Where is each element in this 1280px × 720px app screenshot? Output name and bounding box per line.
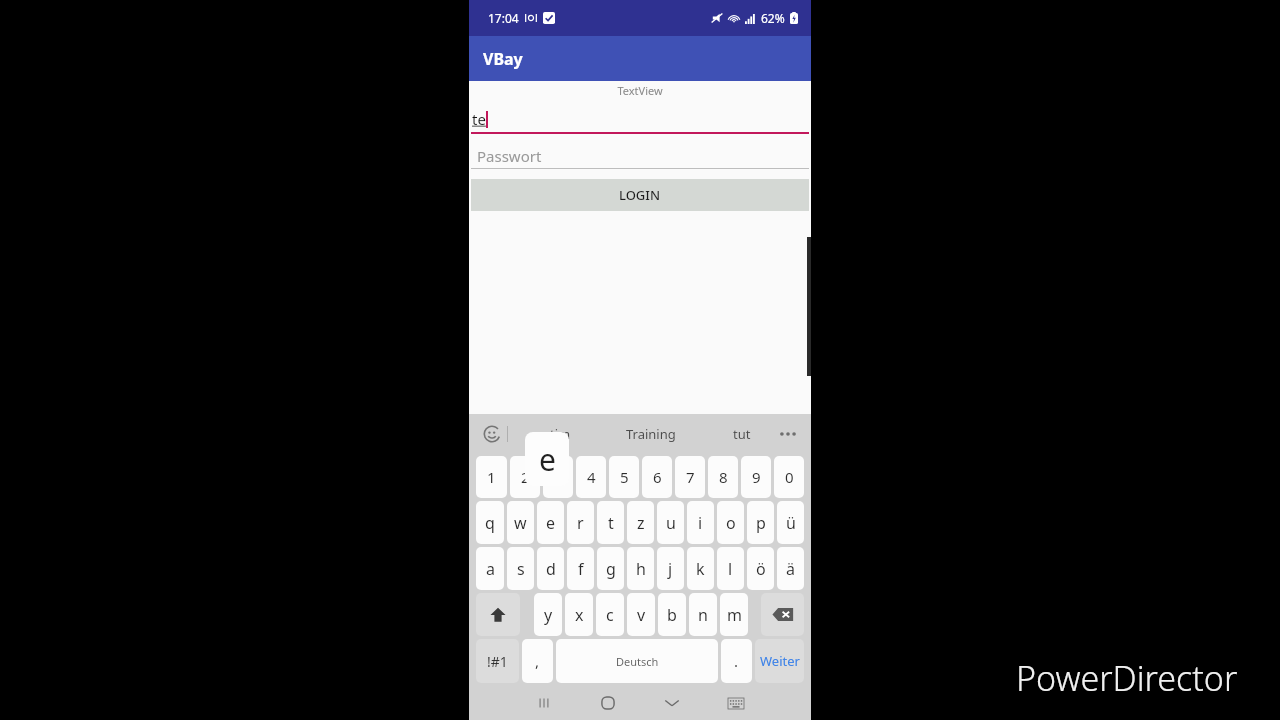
button[interactable]: b bbox=[658, 593, 686, 636]
button[interactable]: 0 bbox=[774, 456, 804, 498]
staticText: 2 bbox=[521, 467, 530, 487]
staticText: ä bbox=[786, 558, 795, 580]
staticText: ö bbox=[756, 558, 766, 580]
button[interactable]: te bbox=[471, 106, 809, 132]
staticText: 9 bbox=[752, 467, 761, 487]
staticText: PowerDirector bbox=[1016, 655, 1238, 701]
button[interactable]: Recent apps bbox=[529, 688, 559, 718]
button[interactable]: n bbox=[689, 593, 717, 636]
staticText: Training bbox=[626, 425, 676, 443]
button[interactable]: 6 bbox=[642, 456, 672, 498]
button[interactable]: Training bbox=[605, 414, 696, 454]
button[interactable]: ö bbox=[747, 547, 774, 590]
staticText: 1 bbox=[487, 467, 496, 487]
staticText: tut bbox=[733, 425, 751, 443]
button[interactable]: Home bbox=[593, 688, 623, 718]
staticText: Passwort bbox=[477, 146, 542, 166]
button[interactable]: 4 bbox=[576, 456, 606, 498]
button[interactable]: p bbox=[747, 501, 774, 544]
button[interactable]: r bbox=[567, 501, 594, 544]
button[interactable]: g bbox=[597, 547, 624, 590]
button[interactable]: 2 bbox=[510, 456, 540, 498]
staticText: g bbox=[606, 558, 616, 580]
staticText: i bbox=[698, 512, 703, 534]
button[interactable]: . bbox=[721, 639, 752, 683]
button[interactable]: 9 bbox=[741, 456, 771, 498]
button[interactable]: f bbox=[567, 547, 594, 590]
staticText: e bbox=[546, 512, 556, 534]
button[interactable]: y bbox=[534, 593, 562, 636]
button[interactable]: e bbox=[537, 501, 564, 544]
staticText: VBay bbox=[483, 48, 523, 70]
button[interactable]: Passwort bbox=[471, 143, 809, 168]
staticText: 0 bbox=[785, 467, 794, 487]
staticText: r bbox=[577, 512, 584, 534]
button[interactable]: tim bbox=[515, 414, 605, 454]
button[interactable]: h bbox=[627, 547, 654, 590]
button[interactable]: LOGIN bbox=[471, 179, 809, 211]
button[interactable]: a bbox=[476, 547, 504, 590]
button[interactable]: Change keyboard bbox=[721, 688, 751, 718]
button[interactable]: q bbox=[476, 501, 504, 544]
button[interactable]: o bbox=[717, 501, 744, 544]
staticText: 62% bbox=[761, 10, 785, 26]
button[interactable]: More suggestions bbox=[777, 423, 799, 445]
button[interactable]: z bbox=[627, 501, 654, 544]
button[interactable]: Emoji bbox=[481, 423, 503, 445]
staticText: s bbox=[517, 558, 525, 580]
staticText: b bbox=[667, 604, 677, 626]
staticText: te bbox=[472, 109, 486, 129]
button[interactable]: u bbox=[657, 501, 684, 544]
button[interactable]: w bbox=[507, 501, 534, 544]
staticText: k bbox=[696, 558, 705, 580]
staticText: TextView bbox=[469, 83, 811, 98]
button[interactable]: l bbox=[717, 547, 744, 590]
staticText: w bbox=[514, 512, 527, 534]
staticText: c bbox=[606, 604, 614, 626]
button[interactable]: 3 bbox=[543, 456, 573, 498]
button[interactable]: tut bbox=[696, 414, 787, 454]
button[interactable]: s bbox=[507, 547, 534, 590]
staticText: y bbox=[544, 604, 553, 626]
staticText: 4 bbox=[587, 467, 596, 487]
button[interactable]: i bbox=[687, 501, 714, 544]
staticText: z bbox=[637, 512, 645, 534]
staticText: a bbox=[486, 558, 495, 580]
button[interactable]: 7 bbox=[675, 456, 705, 498]
staticText: n bbox=[698, 604, 708, 626]
button[interactable]: 1 bbox=[476, 456, 507, 498]
staticText: d bbox=[546, 558, 556, 580]
button[interactable]: , bbox=[522, 639, 553, 683]
staticText: o bbox=[726, 512, 736, 534]
button[interactable]: Hide keyboard bbox=[657, 688, 687, 718]
staticText: 7 bbox=[686, 467, 695, 487]
staticText: p bbox=[756, 512, 766, 534]
button[interactable]: Deutsch bbox=[556, 639, 718, 683]
staticText: ü bbox=[786, 512, 796, 534]
button[interactable]: Backspace bbox=[761, 593, 804, 636]
button[interactable]: ü bbox=[777, 501, 804, 544]
staticText: h bbox=[636, 558, 646, 580]
staticText: , bbox=[535, 651, 540, 671]
button[interactable]: Weiter bbox=[755, 639, 804, 683]
button[interactable]: m bbox=[720, 593, 748, 636]
staticText: f bbox=[578, 558, 584, 580]
button[interactable]: 8 bbox=[708, 456, 738, 498]
staticText: u bbox=[666, 512, 676, 534]
button[interactable]: c bbox=[596, 593, 624, 636]
staticText: Deutsch bbox=[616, 654, 659, 669]
staticText: l bbox=[728, 558, 733, 580]
staticText: tim bbox=[550, 425, 571, 443]
button[interactable]: k bbox=[687, 547, 714, 590]
staticText: q bbox=[485, 512, 495, 534]
button[interactable]: Shift bbox=[476, 593, 520, 636]
button[interactable]: x bbox=[565, 593, 593, 636]
button[interactable]: !#1 bbox=[476, 639, 519, 683]
button[interactable]: t bbox=[597, 501, 624, 544]
button[interactable]: d bbox=[537, 547, 564, 590]
button[interactable]: ä bbox=[777, 547, 804, 590]
button[interactable]: j bbox=[657, 547, 684, 590]
button[interactable]: 5 bbox=[609, 456, 639, 498]
button[interactable]: v bbox=[627, 593, 655, 636]
